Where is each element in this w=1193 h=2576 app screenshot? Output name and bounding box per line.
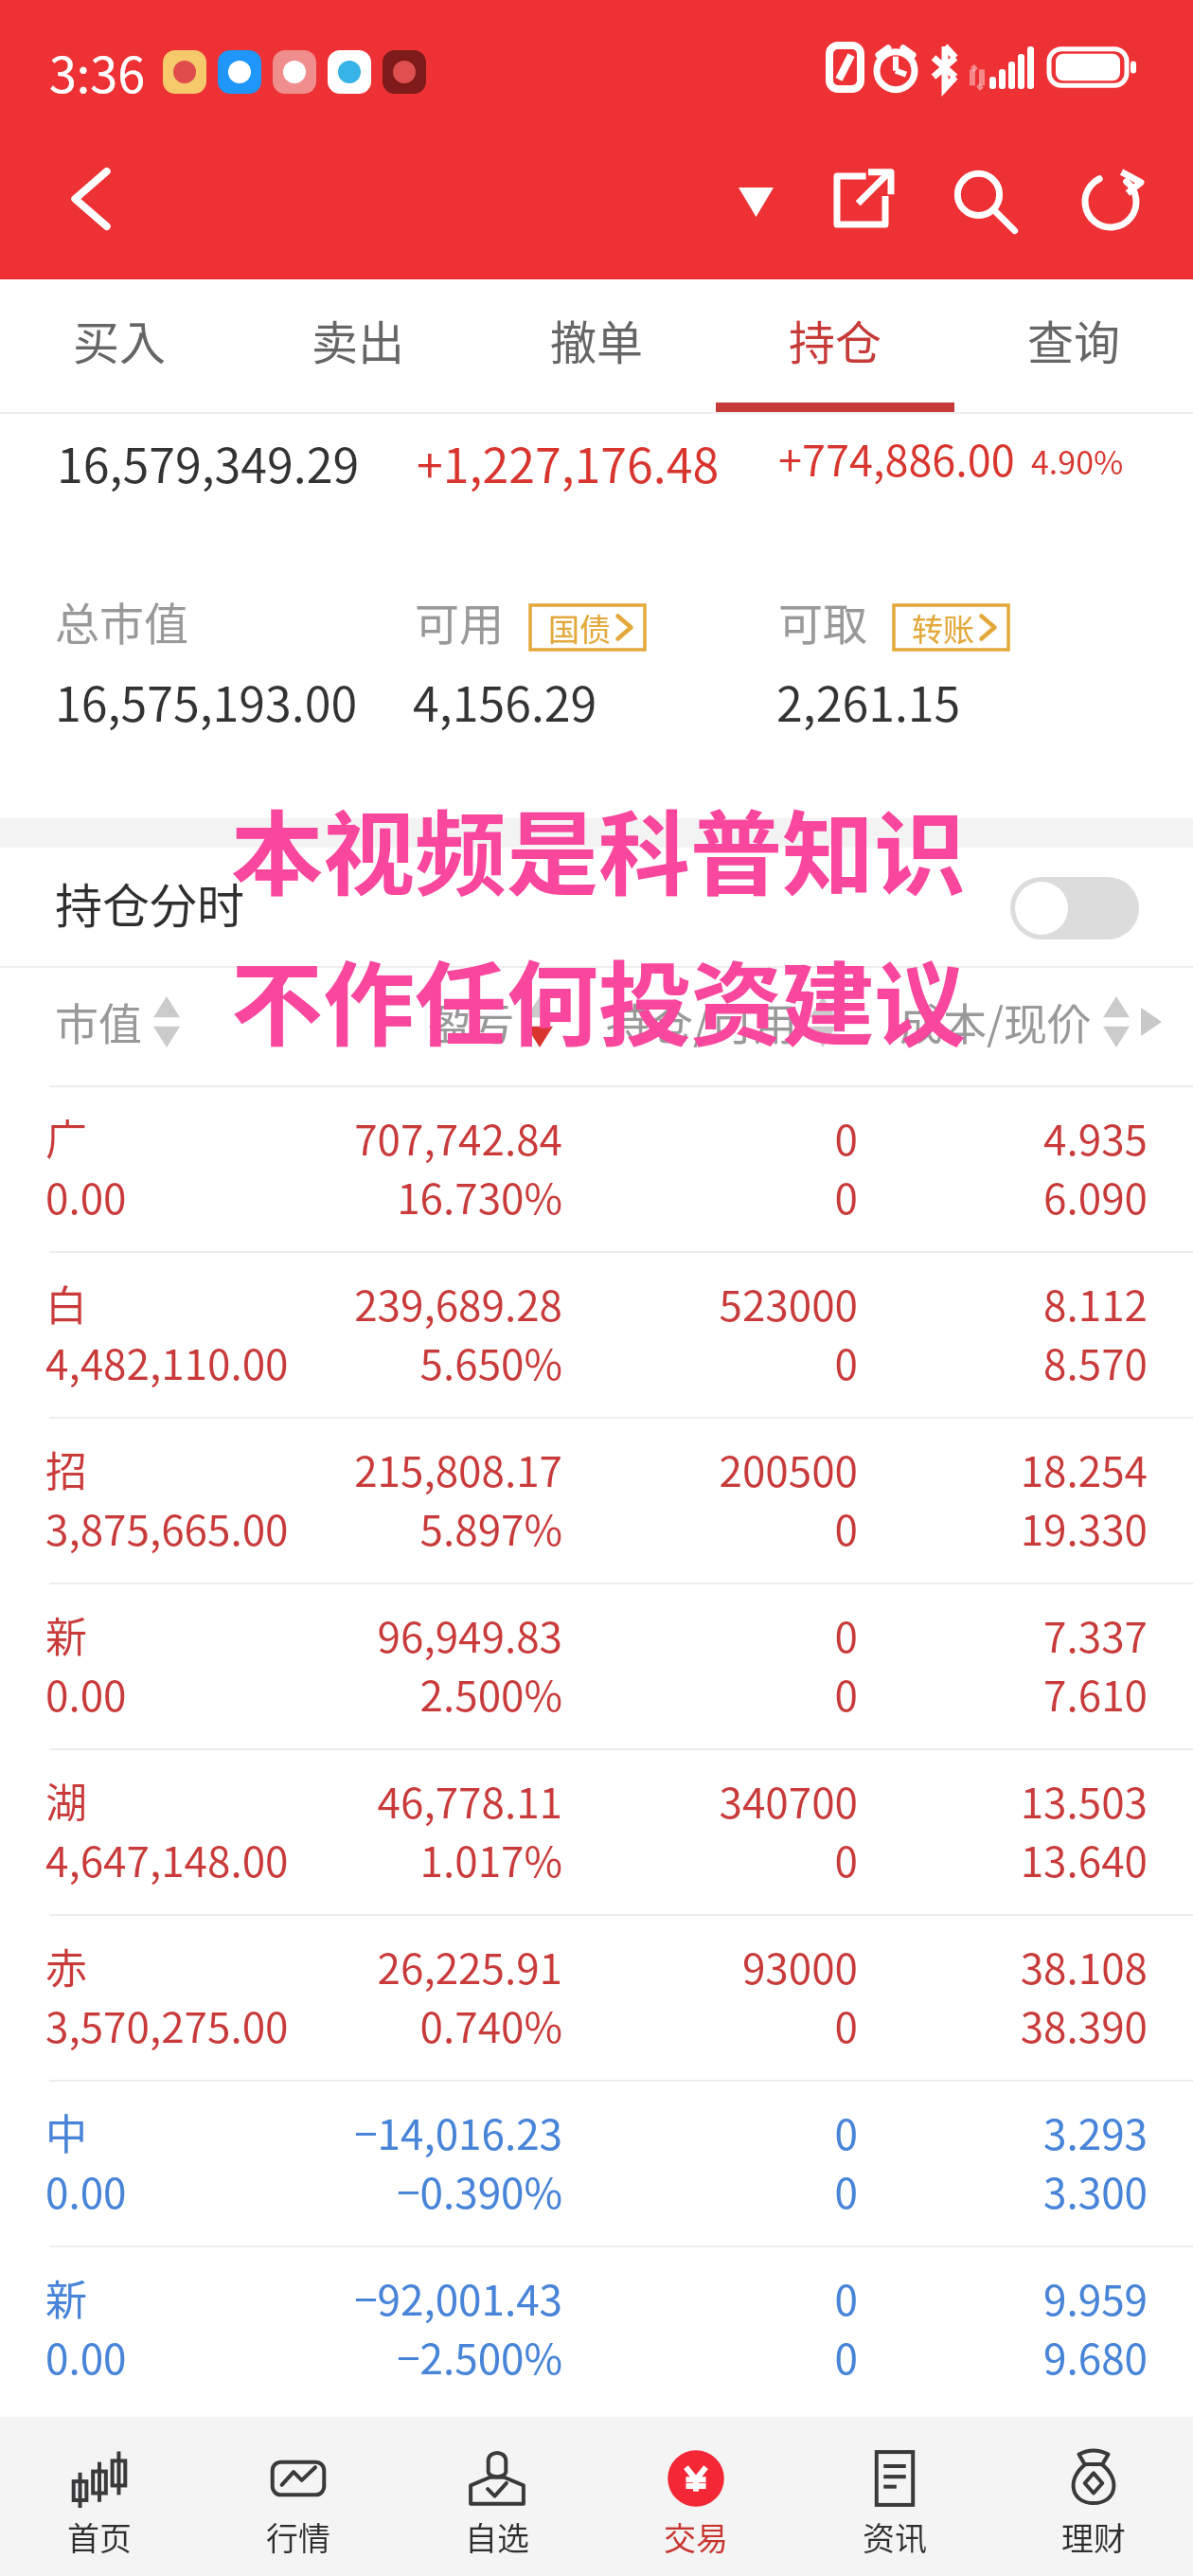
button[interactable]: Toggle intraday chart: [1010, 877, 1139, 939]
staticText: 26,225.91: [0, 1936, 562, 1996]
staticText: 4.90%: [1031, 438, 1124, 484]
staticText: 撤单: [550, 306, 644, 373]
staticText: +774,886.00: [778, 427, 1015, 488]
staticText: 转账: [912, 605, 974, 650]
staticText: 239,689.28: [0, 1273, 562, 1333]
button[interactable]: 交易: [596, 2417, 795, 2576]
staticText: 4,156.29: [413, 667, 597, 735]
staticText: 523000: [0, 1273, 858, 1333]
button[interactable]: 招: [0, 1419, 1193, 1584]
button[interactable]: Search: [938, 154, 1033, 249]
staticText: 340700: [0, 1770, 858, 1831]
staticText: 0.00: [45, 2160, 127, 2221]
staticText: 资讯: [863, 2513, 927, 2560]
button[interactable]: 卖出: [239, 279, 477, 414]
staticText: 交易: [664, 2513, 728, 2560]
staticText: 93000: [0, 1936, 858, 1996]
staticText: 招: [45, 1439, 87, 1499]
staticText: 4.935: [0, 1107, 1148, 1168]
staticText: 湖: [45, 1770, 87, 1831]
staticText: 215,808.17: [0, 1439, 562, 1499]
button[interactable]: 新: [0, 1584, 1193, 1750]
button[interactable]: Dropdown: [699, 145, 812, 259]
button[interactable]: Share: [815, 152, 910, 246]
button[interactable]: 中: [0, 2082, 1193, 2247]
staticText: 1.017%: [0, 1829, 562, 1889]
staticText: 38.390: [0, 1995, 1148, 2055]
staticText: 0: [0, 2102, 858, 2162]
staticText: 0: [0, 2326, 858, 2387]
staticText: 白: [45, 1273, 87, 1333]
button[interactable]: 行情: [199, 2417, 398, 2576]
button[interactable]: 首页: [0, 2417, 199, 2576]
staticText: 盈亏: [428, 990, 515, 1053]
staticText: 9.959: [0, 2267, 1148, 2328]
staticText: 4,647,148.00: [45, 1829, 289, 1889]
staticText: 新: [45, 1604, 87, 1665]
button[interactable]: Refresh: [1063, 154, 1158, 249]
button[interactable]: 持仓: [716, 279, 954, 414]
button[interactable]: 转账: [894, 605, 1008, 650]
staticText: −92,001.43: [0, 2267, 562, 2328]
staticText: 0: [0, 1332, 858, 1392]
staticText: 38.108: [0, 1936, 1148, 1996]
button[interactable]: 买入: [0, 279, 239, 414]
staticText: 16,579,349.29: [57, 428, 360, 496]
staticText: 新: [45, 2267, 87, 2328]
staticText: 持仓分时: [55, 868, 244, 937]
staticText: 3:36: [49, 36, 146, 107]
staticText: −2.500%: [0, 2326, 562, 2387]
staticText: 0: [0, 1663, 858, 1724]
staticText: 8.112: [0, 1273, 1148, 1333]
staticText: 16,575,193.00: [55, 667, 358, 735]
staticText: 13.503: [0, 1770, 1148, 1831]
staticText: 不作任何投资建议: [231, 931, 966, 1064]
staticText: 0.00: [45, 2326, 127, 2387]
staticText: 理财: [1061, 2513, 1126, 2560]
staticText: 可用: [415, 588, 504, 651]
button[interactable]: 撤单: [477, 279, 716, 414]
staticText: 自选: [465, 2513, 529, 2560]
staticText: 卖出: [312, 306, 405, 373]
staticText: 首页: [67, 2513, 132, 2560]
staticText: 5.897%: [0, 1497, 562, 1558]
button[interactable]: 湖: [0, 1750, 1193, 1916]
staticText: 3,570,275.00: [45, 1995, 289, 2055]
staticText: 0: [0, 1829, 858, 1889]
staticText: 2.500%: [0, 1663, 562, 1724]
staticText: +1,227,176.48: [417, 428, 720, 496]
button[interactable]: 查询: [954, 279, 1193, 414]
staticText: 2,261.15: [776, 667, 961, 735]
button[interactable]: 国债: [530, 605, 645, 650]
staticText: 广: [45, 1107, 87, 1168]
staticText: 总市值: [55, 588, 188, 651]
staticText: 国债: [548, 605, 611, 650]
button[interactable]: 自选: [398, 2417, 596, 2576]
staticText: 9.680: [0, 2326, 1148, 2387]
staticText: 查询: [1027, 306, 1121, 373]
staticText: 0: [0, 1604, 858, 1665]
staticText: 6.090: [0, 1166, 1148, 1226]
staticText: 7.337: [0, 1604, 1148, 1665]
staticText: 0.00: [45, 1663, 127, 1724]
staticText: 0: [0, 1497, 858, 1558]
button[interactable]: Back: [25, 133, 157, 265]
staticText: 行情: [266, 2513, 330, 2560]
button[interactable]: 新: [0, 2247, 1193, 2413]
staticText: 96,949.83: [0, 1604, 562, 1665]
staticText: 持仓/可用: [606, 990, 798, 1053]
staticText: 0: [0, 1995, 858, 2055]
staticText: 0: [0, 1166, 858, 1226]
button[interactable]: 白: [0, 1253, 1193, 1419]
staticText: 3,875,665.00: [45, 1497, 289, 1558]
staticText: 成本/现价: [899, 990, 1092, 1053]
staticText: 8.570: [0, 1332, 1148, 1392]
staticText: 3.300: [0, 2160, 1148, 2221]
staticText: 买入: [73, 306, 167, 373]
button[interactable]: 赤: [0, 1916, 1193, 2082]
staticText: 5.650%: [0, 1332, 562, 1392]
button[interactable]: 广: [0, 1087, 1193, 1253]
button[interactable]: 理财: [994, 2417, 1193, 2576]
button[interactable]: 资讯: [795, 2417, 994, 2576]
staticText: 3.293: [0, 2102, 1148, 2162]
